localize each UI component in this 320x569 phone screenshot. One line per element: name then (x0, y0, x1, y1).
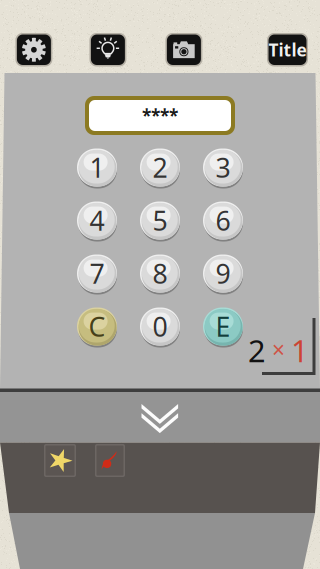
staticText: 0 (152, 309, 167, 344)
button[interactable]: Settings (15, 33, 52, 66)
button[interactable]: 1 (76, 146, 118, 189)
button[interactable]: 2 (139, 146, 181, 189)
staticText: 1 (89, 150, 104, 185)
button[interactable]: 8 (139, 252, 181, 295)
staticText: C (88, 309, 105, 344)
staticText: **** (142, 104, 178, 127)
button[interactable]: 9 (202, 252, 244, 295)
button[interactable]: E (202, 305, 244, 348)
button[interactable]: 5 (139, 199, 181, 242)
button[interactable]: Expand (141, 404, 178, 434)
staticText: 8 (152, 256, 167, 291)
staticText: Title (268, 38, 306, 61)
staticText: 9 (215, 256, 230, 291)
staticText: 6 (215, 203, 230, 238)
staticText: 3 (215, 150, 230, 185)
button[interactable]: Hint (89, 33, 126, 66)
button[interactable]: C (76, 305, 118, 348)
button[interactable]: 7 (76, 252, 118, 295)
button[interactable]: Favorite (44, 444, 76, 477)
staticText: 1 (291, 330, 309, 371)
staticText: E (215, 309, 230, 344)
staticText: 2 (248, 330, 266, 371)
button[interactable]: Brush (95, 444, 125, 477)
staticText: × (272, 334, 285, 364)
button[interactable]: 3 (202, 146, 244, 189)
button[interactable]: 0 (139, 305, 181, 348)
button[interactable]: Camera (165, 33, 202, 66)
staticText: 4 (89, 203, 104, 238)
staticText: 2 (152, 150, 167, 185)
staticText: 7 (89, 256, 104, 291)
button[interactable]: Title (267, 33, 308, 66)
button[interactable]: 4 (76, 199, 118, 242)
staticText: 5 (152, 203, 167, 238)
button[interactable]: 6 (202, 199, 244, 242)
